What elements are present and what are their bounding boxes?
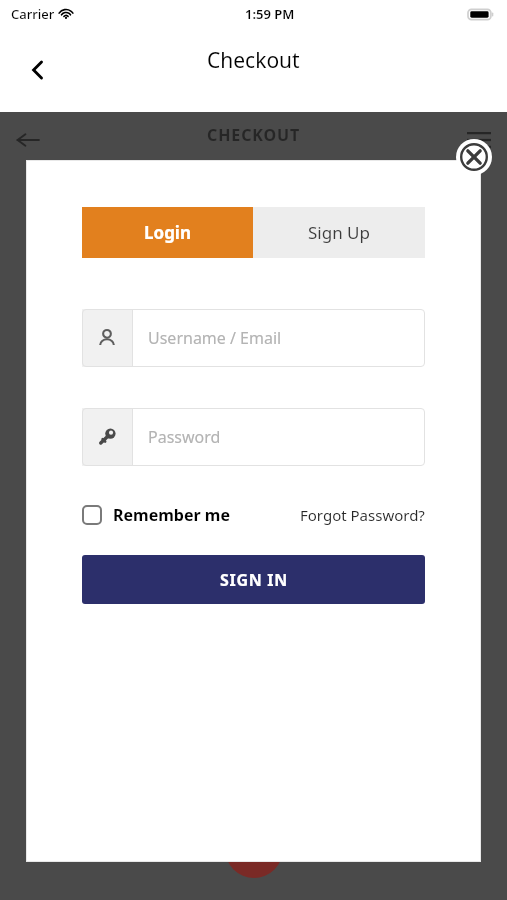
button[interactable]: Sign Up	[253, 207, 425, 258]
button[interactable]: Search	[305, 842, 406, 900]
button[interactable]: Add	[225, 820, 283, 878]
button[interactable]: Home	[0, 842, 102, 900]
staticText: SIGN IN	[220, 569, 288, 591]
button[interactable]: Account	[102, 842, 204, 900]
button[interactable]: SIGN IN	[82, 555, 425, 604]
staticText: Checkout	[207, 46, 300, 75]
staticText: Remember me	[113, 504, 230, 526]
staticText: Password	[148, 426, 221, 448]
staticText: Login	[144, 221, 192, 244]
button[interactable]: Login	[82, 207, 253, 258]
staticText: 1:59 PM	[245, 5, 295, 23]
button[interactable]: Back	[16, 48, 60, 92]
button[interactable]: Menu	[459, 120, 499, 160]
button[interactable]: Forgot Password?	[300, 505, 425, 525]
button[interactable]: More	[406, 842, 507, 900]
staticText: CHECKOUT	[207, 124, 301, 146]
staticText: Carrier	[11, 5, 55, 23]
staticText: Username / Email	[148, 327, 282, 349]
button[interactable]: Navigate up	[6, 118, 50, 162]
staticText: Forgot Password?	[300, 505, 425, 525]
button[interactable]: Username / Email	[82, 309, 425, 367]
button[interactable]: Close	[456, 139, 492, 175]
button[interactable]: Remember me	[82, 504, 230, 526]
button[interactable]: Password	[82, 408, 425, 466]
button[interactable]	[204, 842, 305, 900]
staticText: Sign Up	[308, 221, 370, 244]
